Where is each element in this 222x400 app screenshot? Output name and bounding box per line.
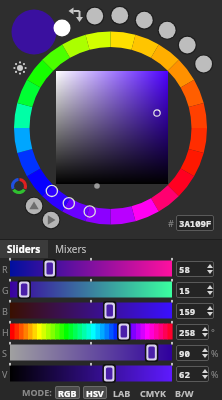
staticText: RGB [58,387,77,399]
button[interactable]: RGB [55,386,80,399]
staticText: 58 [179,263,190,275]
button[interactable]: CMYK [137,386,169,399]
button[interactable]: 159 [176,303,214,319]
staticText: S [2,347,7,359]
button[interactable]: 3A109F [176,215,214,231]
staticText: % [211,368,219,380]
staticText: 62 [179,368,190,380]
staticText: CMYK [140,387,166,399]
staticText: H [2,326,9,338]
staticText: MODE: [22,386,52,398]
button[interactable]: 62 [176,366,209,382]
button[interactable]: Hex colour [177,216,214,231]
button[interactable]: 58 [176,261,214,277]
staticText: ° [211,326,215,338]
button[interactable]: Mixers [48,240,94,258]
button[interactable]: Sliders [0,240,48,258]
button[interactable]: 90 [176,345,209,361]
staticText: 159 [179,305,196,317]
button[interactable]: 15 [176,282,214,298]
staticText: % [211,347,219,359]
button[interactable]: LAB [110,386,134,399]
staticText: 258 [179,326,196,338]
staticText: HSV [86,387,104,399]
staticText: LAB [113,387,131,399]
button[interactable]: 258 [176,324,209,340]
staticText: 3A109F [179,217,212,229]
staticText: V [2,368,8,380]
staticText: # [168,217,174,229]
staticText: Sliders [7,242,41,256]
staticText: B/W [175,387,194,399]
staticText: 90 [179,347,190,359]
button[interactable]: HSV [83,386,107,399]
button[interactable]: B/W [172,386,197,399]
staticText: R [2,263,8,275]
staticText: B [2,305,8,317]
staticText: Mixers [55,242,87,256]
staticText: G [2,284,9,296]
staticText: 15 [179,284,190,296]
